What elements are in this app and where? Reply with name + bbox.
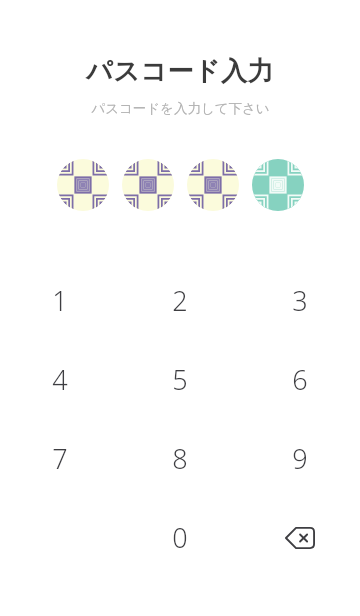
button[interactable]: 8 (120, 419, 240, 498)
staticText: 0 (172, 519, 188, 556)
staticText: パスコードを入力して下さい (91, 100, 270, 117)
staticText: 7 (52, 440, 68, 477)
button[interactable]: 5 (120, 340, 240, 419)
button[interactable]: 7 (0, 419, 120, 498)
button[interactable]: 6 (240, 340, 360, 419)
staticText: 9 (292, 440, 308, 477)
staticText: 6 (292, 361, 308, 398)
button[interactable]: 3 (240, 261, 360, 340)
button[interactable]: 0 (120, 498, 240, 577)
staticText: パスコード入力 (86, 55, 274, 88)
button[interactable]: Delete (240, 498, 360, 577)
button[interactable]: 4 (0, 340, 120, 419)
staticText: 5 (172, 361, 188, 398)
staticText: 8 (172, 440, 188, 477)
button[interactable]: 9 (240, 419, 360, 498)
staticText: 2 (172, 282, 188, 319)
staticText: 3 (292, 282, 308, 319)
button[interactable]: 2 (120, 261, 240, 340)
button[interactable]: 1 (0, 261, 120, 340)
staticText: 4 (52, 361, 68, 398)
staticText: 1 (52, 282, 68, 319)
